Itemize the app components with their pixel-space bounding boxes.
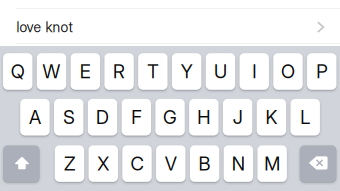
button[interactable]: X [88,145,118,183]
button[interactable]: Y [172,53,201,91]
staticText: O [281,60,295,83]
staticText: Q [11,60,25,83]
staticText: X [97,152,109,175]
button[interactable]: A [20,99,50,136]
staticText: I [252,60,256,83]
staticText: R [113,60,125,83]
staticText: V [165,152,177,175]
staticText: Z [64,152,75,175]
button[interactable]: W [37,53,66,91]
button[interactable]: S [54,99,83,136]
button[interactable]: F [121,99,151,136]
staticText: Y [181,60,193,83]
button[interactable]: E [71,53,100,91]
staticText: T [147,60,158,83]
button[interactable]: J [223,99,252,136]
staticText: S [63,106,74,128]
button[interactable]: Shift [3,145,39,183]
staticText: A [29,106,41,128]
button[interactable]: Z [55,145,84,183]
button[interactable]: H [189,99,219,136]
staticText: U [214,60,227,83]
button[interactable]: U [206,53,235,91]
button[interactable]: R [104,53,134,91]
button[interactable]: P [307,53,336,91]
button[interactable]: B [190,145,219,183]
staticText: K [265,106,277,128]
button[interactable]: K [257,99,286,136]
staticText: G [163,106,177,128]
button[interactable]: love knot [0,10,340,45]
staticText: love knot [17,19,73,35]
button[interactable]: G [155,99,185,136]
button[interactable]: M [257,145,287,183]
staticText: E [80,60,91,83]
button[interactable]: C [122,145,152,183]
button[interactable]: V [156,145,185,183]
staticText: D [96,106,109,128]
button[interactable]: D [88,99,117,136]
button[interactable]: I [239,53,269,91]
staticText: F [131,106,141,128]
staticText: N [232,152,245,175]
staticText: W [42,60,60,83]
staticText: L [300,106,310,128]
button[interactable]: Delete [300,145,336,183]
staticText: H [197,106,210,128]
staticText: M [264,152,280,175]
button[interactable]: O [273,53,303,91]
staticText: C [130,152,143,175]
button[interactable]: N [224,145,253,183]
button[interactable]: Q [3,53,32,91]
button[interactable]: L [290,99,320,136]
button[interactable]: T [138,53,168,91]
staticText: P [316,60,327,83]
staticText: J [233,106,243,128]
staticText: B [199,152,211,175]
